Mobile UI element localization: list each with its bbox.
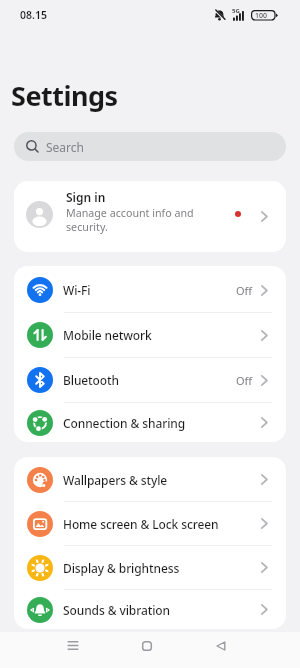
button[interactable] [133, 632, 161, 659]
staticText: Wi-Fi [63, 282, 91, 298]
staticText: security. [66, 220, 108, 235]
staticText: Display & brightness [63, 560, 180, 576]
button[interactable]: Bluetooth [14, 358, 286, 402]
button[interactable]: Display & brightness [14, 546, 286, 589]
staticText: Off [236, 373, 253, 388]
staticText: 100 [255, 11, 268, 21]
button[interactable]: Wi-Fi [14, 268, 286, 312]
staticText: Settings [11, 77, 118, 114]
staticText: Connection & sharing [63, 415, 186, 431]
staticText: Sounds & vibration [63, 602, 170, 618]
button[interactable] [207, 632, 235, 659]
staticText: Sign in [66, 189, 106, 205]
staticText: Off [236, 283, 253, 298]
staticText: Bluetooth [63, 372, 119, 388]
staticText: Wallpapers & style [63, 472, 168, 488]
button[interactable] [59, 632, 87, 659]
button[interactable]: Home screen & Lock screen [14, 502, 286, 545]
button[interactable]: Sounds & vibration [14, 590, 286, 629]
staticText: Home screen & Lock screen [63, 516, 219, 532]
staticText: 08.15 [20, 8, 47, 22]
button[interactable]: Wallpapers & style [14, 458, 286, 501]
button[interactable]: Connection & sharing [14, 403, 286, 442]
staticText: 5G [232, 7, 240, 15]
staticText: Manage account info and [66, 206, 194, 221]
button[interactable]: Mobile network [14, 313, 286, 357]
button[interactable]: Search [14, 132, 286, 161]
button[interactable]: Sign in [14, 181, 286, 252]
staticText: Mobile network [63, 327, 152, 343]
staticText: Search [46, 139, 84, 155]
